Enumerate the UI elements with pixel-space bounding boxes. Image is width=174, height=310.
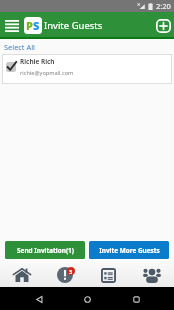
- button[interactable]: Recents: [126, 289, 146, 309]
- staticText: 2:20: [156, 1, 171, 11]
- button[interactable]: Home: [77, 289, 97, 309]
- staticText: Select All: [4, 42, 35, 52]
- button[interactable]: Guest list: [86, 259, 130, 287]
- button[interactable]: Alerts: [43, 259, 86, 287]
- staticText: S: [33, 18, 40, 33]
- button[interactable]: Invite More Guests: [89, 241, 169, 259]
- button[interactable]: Send Invitation(1): [5, 241, 85, 259]
- staticText: Send Invitation(1): [17, 246, 74, 255]
- button[interactable]: Select All: [0, 39, 174, 54]
- staticText: Richie Rich: [20, 57, 55, 66]
- staticText: P: [26, 18, 33, 33]
- staticText: Invite More Guests: [99, 246, 160, 255]
- button[interactable]: Home: [0, 259, 43, 287]
- button[interactable]: Back: [29, 289, 49, 309]
- staticText: Invite Guests: [44, 19, 103, 32]
- button[interactable]: Add guest: [153, 12, 174, 39]
- button[interactable]: Menu: [0, 12, 24, 39]
- button[interactable]: Richie Rich: [2, 54, 172, 84]
- button[interactable]: Guests: [130, 259, 174, 287]
- staticText: 3: [69, 268, 73, 275]
- staticText: richie@yopmail.com: [20, 69, 74, 77]
